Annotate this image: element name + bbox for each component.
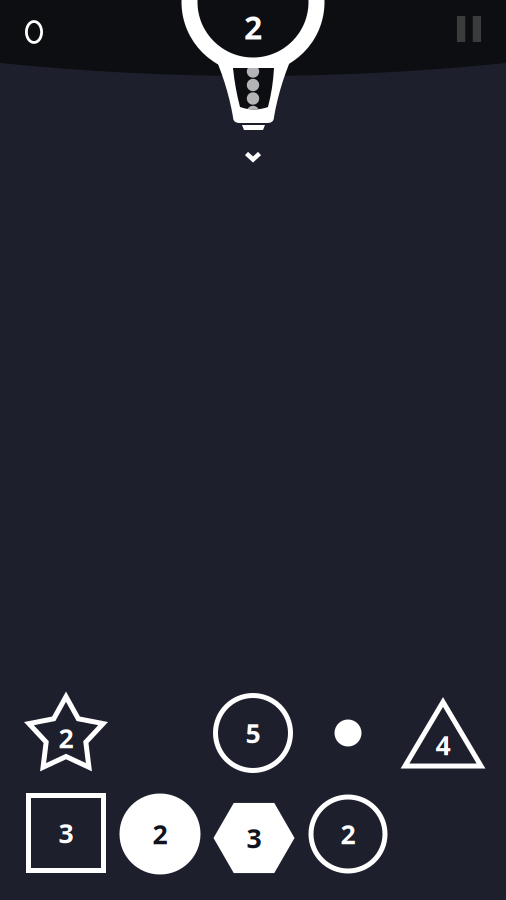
button[interactable]: 4 xyxy=(400,690,486,776)
button[interactable]: 2 xyxy=(119,793,200,874)
staticText: 2 xyxy=(152,816,167,852)
button[interactable]: 5 xyxy=(213,693,293,773)
staticText: 2 xyxy=(58,720,73,756)
button[interactable]: 2 xyxy=(308,794,387,873)
staticText: 3 xyxy=(58,815,73,851)
button[interactable]: 2 xyxy=(24,692,107,775)
staticText: 2 xyxy=(340,816,355,852)
staticText: 3 xyxy=(246,820,261,856)
button[interactable]: Balls remaining xyxy=(10,8,58,56)
staticText: 2 xyxy=(244,6,262,48)
staticText: 4 xyxy=(435,727,450,763)
button[interactable]: Pause xyxy=(438,1,500,57)
button[interactable]: 3 xyxy=(26,793,106,873)
button[interactable] xyxy=(334,719,361,746)
staticText: 5 xyxy=(245,715,260,751)
button[interactable]: 3 xyxy=(213,797,294,878)
